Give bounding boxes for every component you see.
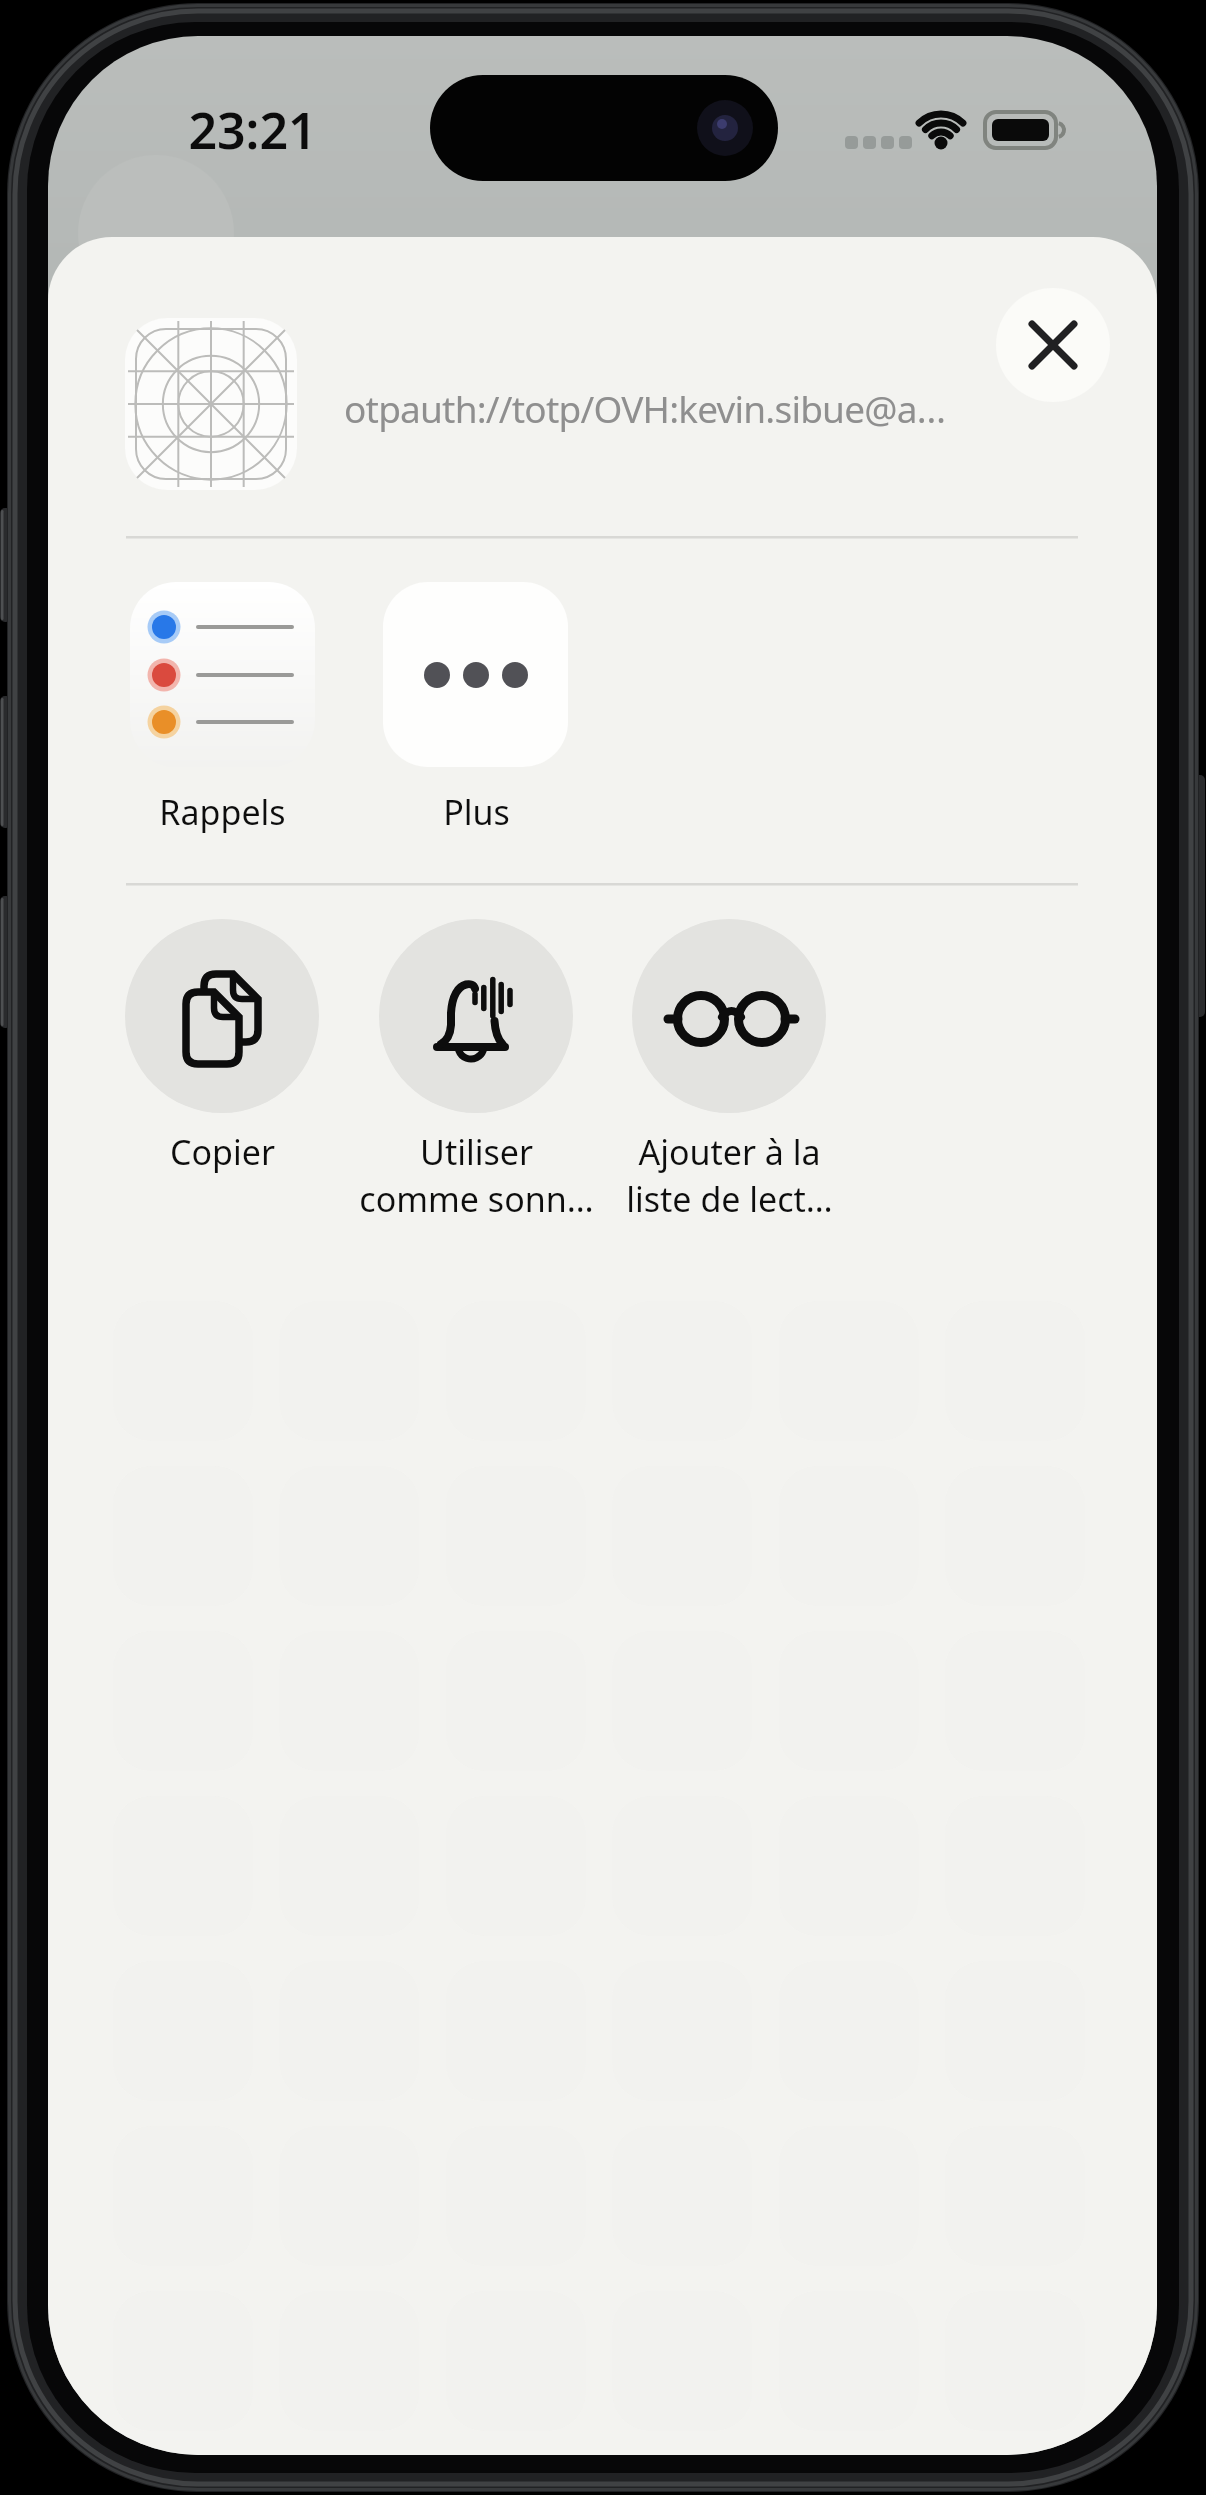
staticText: otpauth://totp/OVH:kevin.sibue@a… <box>344 383 946 433</box>
staticText: liste de lect… <box>626 1176 833 1222</box>
staticText: Copier <box>170 1129 275 1175</box>
staticText: Utiliser <box>420 1129 533 1175</box>
staticText: Ajouter à la <box>638 1129 821 1175</box>
button[interactable] <box>379 919 573 1239</box>
button[interactable] <box>632 919 826 1239</box>
staticText: 23:21 <box>188 96 317 164</box>
staticText: comme sonn… <box>359 1176 594 1222</box>
staticText: Plus <box>443 789 510 835</box>
button[interactable] <box>130 582 315 862</box>
button[interactable] <box>996 288 1110 402</box>
button[interactable] <box>125 919 319 1239</box>
button[interactable] <box>383 582 568 862</box>
staticText: Rappels <box>159 789 286 835</box>
